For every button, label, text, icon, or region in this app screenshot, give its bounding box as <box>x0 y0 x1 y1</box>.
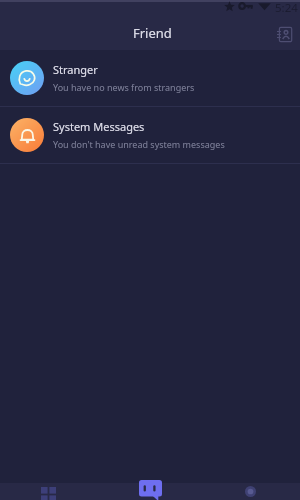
staticText: System Messages <box>53 119 145 134</box>
button[interactable]: System Messages <box>0 107 300 164</box>
staticText: You have no news from strangers <box>53 81 195 93</box>
staticText: 5:24 <box>275 0 298 12</box>
button[interactable]: Chat <box>100 472 200 500</box>
staticText: Friend <box>133 24 172 42</box>
button[interactable]: Stranger <box>0 50 300 107</box>
staticText: Stranger <box>53 62 98 77</box>
button[interactable]: Discover <box>0 472 100 500</box>
staticText: You don't have unread system messages <box>53 138 225 150</box>
button[interactable]: Profile <box>200 472 300 500</box>
button[interactable]: Contacts <box>271 21 297 47</box>
